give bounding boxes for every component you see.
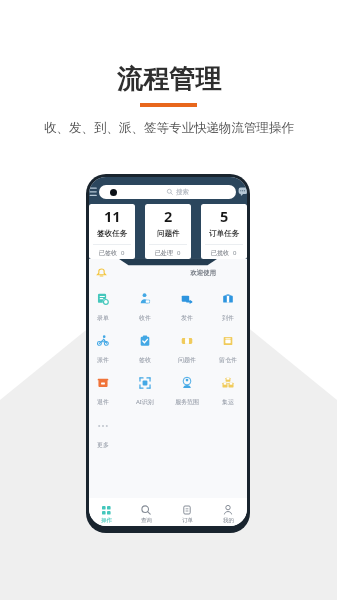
staticText: 签收任务: [97, 229, 127, 238]
staticText: 更多: [97, 441, 109, 448]
staticText: 订单: [182, 517, 193, 524]
button[interactable]: 录单: [89, 293, 123, 321]
staticText: 查询: [141, 517, 152, 524]
staticText: 流程管理: [117, 63, 221, 96]
staticText: 问题件: [178, 356, 196, 363]
staticText: 派件: [97, 356, 109, 363]
button[interactable]: 签收: [125, 335, 165, 363]
button[interactable]: 派件: [89, 335, 123, 363]
button[interactable]: AI识别: [125, 377, 165, 405]
staticText: 2: [164, 206, 173, 226]
staticText: 发件: [181, 314, 193, 321]
staticText: 签收: [139, 356, 151, 363]
button[interactable]: 5: [201, 204, 247, 259]
button[interactable]: 收件: [125, 293, 165, 321]
button[interactable]: 留仓件: [208, 335, 247, 363]
staticText: 收件: [139, 314, 151, 321]
staticText: AI识别: [136, 398, 154, 405]
button[interactable]: More: [89, 420, 123, 448]
staticText: 0: [121, 249, 125, 257]
button[interactable]: 集运: [208, 377, 247, 405]
button[interactable]: 退件: [89, 377, 123, 405]
button[interactable]: 订单: [169, 505, 205, 525]
button[interactable]: 发件: [167, 293, 207, 321]
button[interactable]: 到件: [208, 293, 247, 321]
button[interactable]: Messages: [238, 186, 247, 198]
staticText: 集运: [222, 398, 234, 405]
button[interactable]: Menu: [89, 186, 98, 198]
staticText: 我的: [223, 517, 234, 524]
staticText: 已处理: [155, 249, 173, 257]
staticText: 操作: [101, 517, 112, 524]
button[interactable]: 2: [145, 204, 191, 259]
staticText: 0: [233, 249, 237, 257]
button[interactable]: 查询: [128, 505, 164, 525]
button[interactable]: Notifications: [96, 267, 107, 278]
button[interactable]: 操作: [89, 505, 124, 525]
button[interactable]: 服务范围: [167, 377, 207, 405]
staticText: 0: [177, 249, 181, 257]
staticText: 录单: [97, 314, 109, 321]
staticText: 订单任务: [209, 229, 239, 238]
staticText: 退件: [97, 398, 109, 405]
button[interactable]: 11: [89, 204, 135, 259]
staticText: 收、发、到、派、签等专业快递物流管理操作: [44, 120, 294, 136]
staticText: 服务范围: [175, 398, 199, 405]
staticText: 搜索: [176, 188, 189, 196]
staticText: 已揽收: [211, 249, 229, 257]
staticText: 5: [220, 206, 229, 226]
staticText: 已签收: [99, 249, 117, 257]
staticText: 留仓件: [219, 356, 237, 363]
staticText: 欢迎使用: [190, 269, 216, 277]
button[interactable]: 我的: [210, 505, 246, 525]
button[interactable]: 问题件: [167, 335, 207, 363]
button[interactable]: 搜索: [99, 185, 236, 199]
staticText: 问题件: [157, 229, 180, 238]
staticText: 11: [104, 206, 121, 226]
staticText: 到件: [222, 314, 234, 321]
